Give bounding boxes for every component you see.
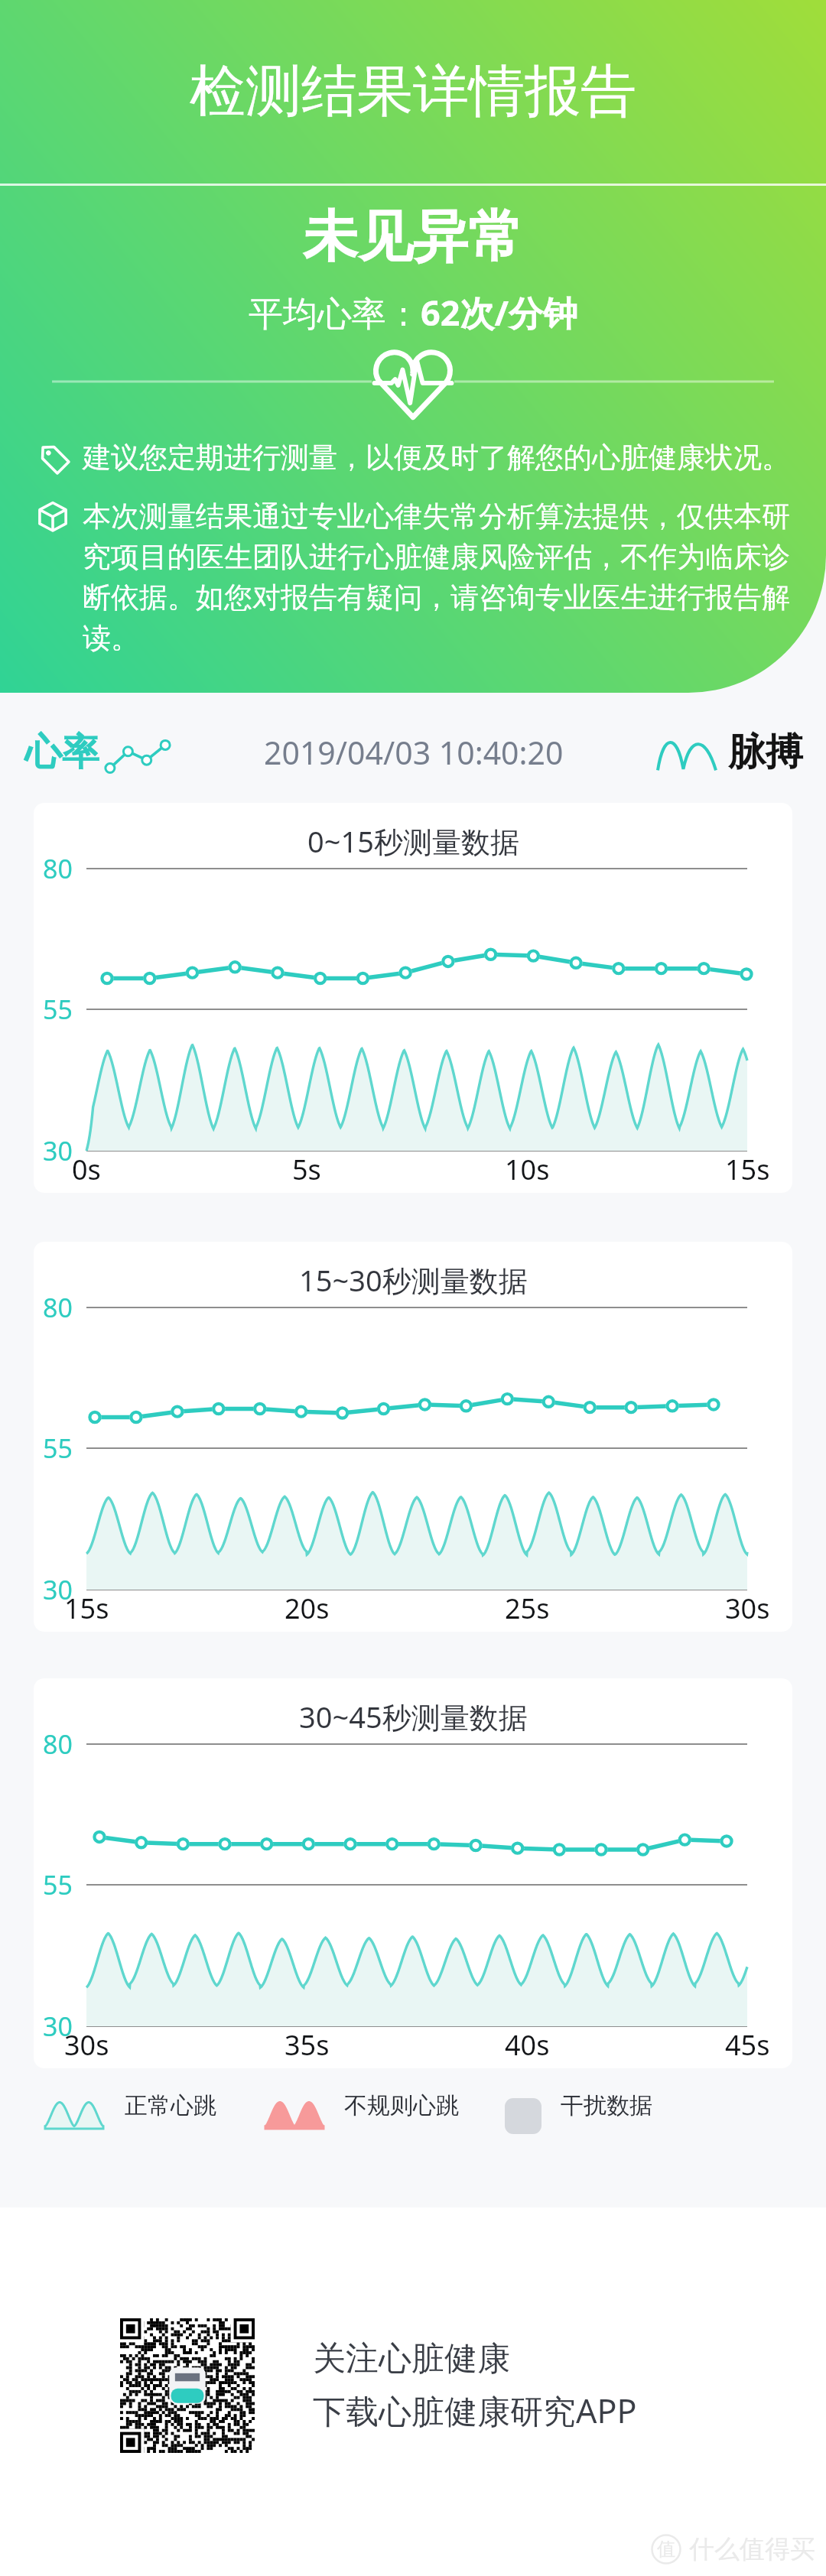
staticText: 0~15秒测量数据 xyxy=(307,821,519,861)
staticText: 45s xyxy=(725,2026,770,2064)
staticText: 未见异常 xyxy=(0,203,826,272)
staticText: 值 xyxy=(657,2538,675,2561)
staticText: 检测结果详情报告 xyxy=(190,57,636,127)
staticText: 脉搏 xyxy=(728,729,803,776)
staticText: 80 xyxy=(43,851,73,886)
staticText: 15s xyxy=(64,1590,109,1627)
staticText: 30s xyxy=(725,1590,770,1627)
staticText: 平均心率：62次/分钟 xyxy=(0,289,826,336)
staticText: 15s xyxy=(725,1151,770,1188)
staticText: 80 xyxy=(43,1290,73,1325)
staticText: 建议您定期进行测量，以便及时了解您的心脏健康状况。 xyxy=(83,440,790,476)
staticText: 2019/04/03 10:40:20 xyxy=(264,731,564,774)
staticText: 30 xyxy=(43,2009,73,2044)
staticText: 30 xyxy=(43,1572,73,1607)
button[interactable]: 30~45秒测量数据 xyxy=(34,1678,792,2068)
staticText: 40s xyxy=(505,2026,550,2064)
staticText: 0s xyxy=(72,1151,101,1188)
other: QR code xyxy=(120,2318,255,2453)
staticText: 30~45秒测量数据 xyxy=(299,1697,528,1736)
staticText: 55 xyxy=(43,992,73,1027)
staticText: 80 xyxy=(43,1727,73,1762)
staticText: 20s xyxy=(285,1590,330,1627)
staticText: 本次测量结果通过专业心律失常分析算法提供，仅供本研究项目的医生团队进行心脏健康风… xyxy=(83,499,798,656)
button[interactable]: 15~30秒测量数据 xyxy=(34,1242,792,1632)
staticText: 干扰数据 xyxy=(561,2091,652,2120)
staticText: 什么值得买 xyxy=(689,2533,815,2565)
staticText: 30s xyxy=(64,2026,109,2064)
staticText: 35s xyxy=(285,2026,330,2064)
staticText: 25s xyxy=(505,1590,550,1627)
staticText: 5s xyxy=(292,1151,321,1188)
staticText: 不规则心跳 xyxy=(344,2091,459,2120)
staticText: 下载心脏健康研究APP xyxy=(313,2388,637,2433)
button[interactable]: 0~15秒测量数据 xyxy=(34,803,792,1193)
staticText: 30 xyxy=(43,1133,73,1168)
staticText: 10s xyxy=(505,1151,550,1188)
staticText: 55 xyxy=(43,1867,73,1902)
staticText: 正常心跳 xyxy=(125,2091,216,2120)
staticText: 15~30秒测量数据 xyxy=(299,1260,528,1300)
staticText: 关注心脏健康 xyxy=(313,2338,510,2379)
staticText: 55 xyxy=(43,1431,73,1466)
staticText: 心率 xyxy=(24,729,99,776)
